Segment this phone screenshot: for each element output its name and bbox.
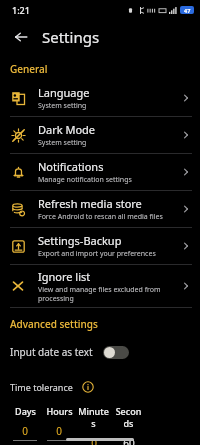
button[interactable]: Language — [0, 80, 200, 116]
staticText: Days — [15, 405, 36, 417]
staticText: 0 — [22, 424, 28, 438]
staticText: 1:21 — [12, 4, 30, 16]
button[interactable]: 0 — [10, 424, 40, 441]
staticText: Time tolerance — [10, 381, 73, 393]
staticText: Dark Mode — [38, 122, 96, 137]
staticText: Minutes — [78, 405, 109, 429]
button[interactable]: 0 — [44, 424, 74, 441]
staticText: Settings-Backup — [38, 233, 122, 248]
staticText: Notifications — [38, 159, 104, 174]
staticText: 0 — [91, 436, 97, 445]
button[interactable]: Notifications — [0, 154, 200, 190]
staticText: General — [10, 62, 48, 76]
staticText: Manage notification settings — [38, 175, 132, 185]
staticText: Ignore list — [38, 269, 91, 284]
button[interactable]: Back — [8, 24, 34, 50]
staticText: 60 — [123, 436, 135, 445]
staticText: 47 — [184, 7, 191, 14]
staticText: 0 — [56, 424, 62, 438]
staticText: View and manage files excluded from proc… — [38, 285, 176, 303]
staticText: Export and import your preferences — [38, 249, 156, 259]
button[interactable]: 60 — [113, 436, 144, 445]
staticText: System setting — [38, 138, 87, 148]
button[interactable]: Settings-Backup — [0, 228, 200, 264]
button[interactable]: Info about time tolerance — [81, 380, 95, 394]
button[interactable]: 0 — [78, 436, 109, 445]
staticText: Settings — [42, 27, 100, 47]
staticText: Input date as text — [10, 345, 93, 359]
staticText: System setting — [38, 101, 87, 111]
button[interactable]: Ignore list — [0, 265, 200, 307]
staticText: Advanced settings — [10, 317, 98, 331]
button[interactable]: Input date as text — [0, 340, 200, 364]
staticText: Force Android to rescan all media files — [38, 212, 163, 222]
staticText: Refresh media store — [38, 196, 142, 211]
staticText: Seconds — [113, 405, 144, 429]
staticText: Hours — [46, 405, 73, 417]
button[interactable]: Refresh media store — [0, 191, 200, 227]
button[interactable]: Dark Mode — [0, 117, 200, 153]
staticText: Language — [38, 85, 90, 100]
